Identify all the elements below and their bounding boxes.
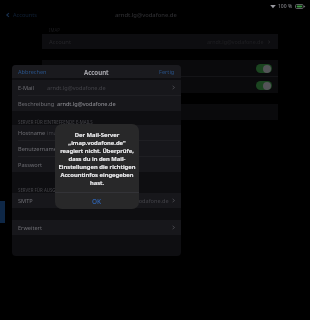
staticText: SERVER FÜR EINTREFFENDE E-MAILS xyxy=(18,119,93,125)
button[interactable]: Toggle setting xyxy=(42,77,278,93)
button[interactable]: Accounts xyxy=(0,9,40,21)
staticText: Abbrechen xyxy=(18,68,47,76)
staticText: Erweitert xyxy=(18,224,42,232)
staticText: Passwort xyxy=(18,161,42,169)
button[interactable]: Toggle setting xyxy=(42,60,278,76)
staticText: imap.vodafone.de xyxy=(47,129,176,137)
button[interactable]: SMTP xyxy=(12,193,181,208)
staticText: Benutzername xyxy=(18,145,57,153)
button[interactable]: Abbrechen xyxy=(17,67,48,77)
staticText: arndt.lg@vodafone.de xyxy=(115,11,177,19)
button[interactable]: Fertig xyxy=(158,67,176,77)
button[interactable]: Benutzername xyxy=(12,141,181,156)
staticText: Der Mail-Server „imap.vodafone.de" reagi… xyxy=(57,131,137,187)
staticText: SERVER FÜR AUSGEHENDE E-MAILS xyxy=(18,187,91,193)
staticText: Account xyxy=(84,68,109,76)
staticText: E-Mail xyxy=(18,84,35,92)
button[interactable]: Passwort xyxy=(12,157,181,172)
staticText: arndt.lg@vodafone.de xyxy=(207,38,264,45)
staticText: Account xyxy=(49,38,72,46)
button[interactable]: Hostname xyxy=(12,125,181,140)
staticText: Beschreibung xyxy=(18,100,55,108)
staticText: arndt.lg@vodafone.de xyxy=(57,100,176,108)
staticText: IMAP xyxy=(49,27,60,33)
staticText: OK xyxy=(92,197,102,206)
button[interactable]: OK xyxy=(55,193,139,209)
button[interactable]: Erweitert xyxy=(12,220,181,235)
staticText: SMTP xyxy=(18,197,33,205)
staticText: arndt.lg xyxy=(57,145,176,153)
staticText: 100 % xyxy=(278,3,293,10)
staticText: Accounts xyxy=(13,11,37,19)
button[interactable]: E-Mail xyxy=(12,80,181,95)
button[interactable]: Beschreibung xyxy=(12,96,181,111)
staticText: smtp.vodafone.de xyxy=(121,197,169,205)
staticText: arndt.lg@vodafone.de xyxy=(47,84,169,92)
staticText: Fertig xyxy=(159,68,175,76)
staticText: Hostname xyxy=(18,129,46,137)
